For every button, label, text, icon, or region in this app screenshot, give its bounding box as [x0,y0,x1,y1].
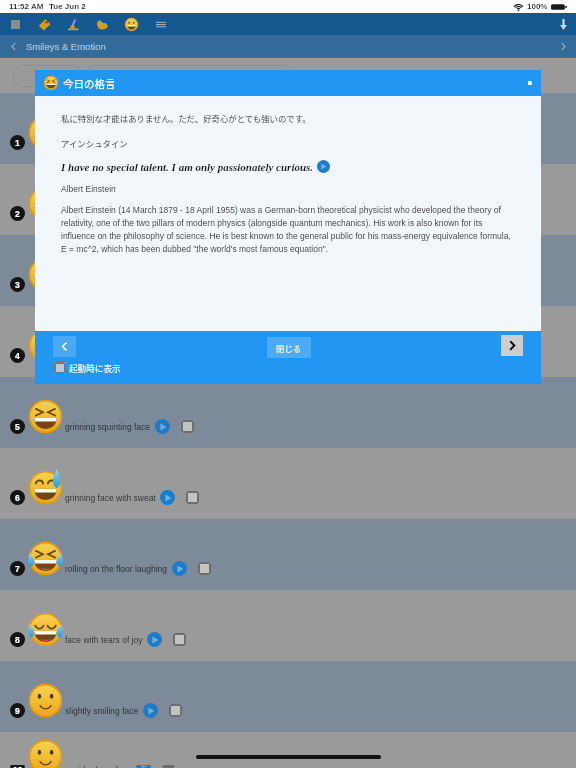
staticText: grinning squinting face [65,422,151,431]
button[interactable]: Close [519,72,541,94]
staticText: Tue Jun 2 [49,2,86,11]
button[interactable]: Play pronunciation [172,561,187,576]
staticText: I have no special talent. I am only pass… [61,161,314,173]
button[interactable]: 2 [0,164,576,235]
staticText: Smileys & Emotion [26,41,106,52]
button[interactable]: 9 [0,661,576,732]
staticText: rolling on the floor laughing [65,564,168,573]
button[interactable]: Select [169,704,182,717]
button[interactable]: 8 [0,590,576,661]
button[interactable]: Emoji [117,13,146,35]
staticText: 6 [15,493,20,502]
staticText: 3 [15,280,20,289]
button[interactable]: Play pronunciation [160,490,175,505]
button[interactable]: Forward [550,35,576,58]
button[interactable]: 閉じる [267,337,311,358]
button[interactable]: Play pronunciation [118,135,133,150]
button[interactable]: 10 [0,732,576,768]
button[interactable]: 7 [0,519,576,590]
staticText: grinning face with sweat [65,493,156,502]
button[interactable]: ? [13,65,83,87]
staticText: 5 [15,422,20,431]
button[interactable]: Select [173,633,186,646]
staticText: 起動時に表示 [69,362,121,374]
staticText: face with tears of joy [65,635,143,644]
button[interactable]: More [146,13,175,35]
button[interactable]: Microscope [59,13,88,35]
staticText: 7 [15,564,20,573]
button[interactable]: Back [0,35,26,58]
button[interactable]: Previous [53,336,76,357]
staticText: grinning face [65,138,114,147]
button[interactable]: Menu [1,13,30,35]
button[interactable]: Next [501,335,523,356]
button[interactable]: Play pronunciation [170,206,185,221]
staticText: 4 [15,351,20,360]
button[interactable]: Search [85,65,295,87]
staticText: 100% [527,2,548,11]
staticText: 10 [13,765,23,768]
button[interactable]: Play pronunciation [147,632,162,647]
button[interactable]: Muscle [88,13,117,35]
staticText: 閉じる [276,342,302,354]
staticText: 今日の格言 [63,76,116,91]
staticText: 8 [15,635,20,644]
button[interactable]: Play pronunciation [143,703,158,718]
staticText: beaming face with smiling eyes [65,351,183,360]
button[interactable]: Play pronunciation [155,419,170,434]
staticText: アインシュタイン [61,137,128,149]
button[interactable]: Select [162,765,175,768]
staticText: grinning face with big eyes [65,209,166,218]
button[interactable]: 3 [0,235,576,306]
staticText: 11:52 AM [9,2,44,11]
staticText: 2 [15,209,20,218]
button[interactable]: 4 [0,306,576,377]
staticText: 9 [15,706,20,715]
button[interactable]: Show at startup [54,362,66,374]
button[interactable]: 5 [0,377,576,448]
staticText: Albert Einstein [61,184,116,193]
button[interactable]: Select [186,491,199,504]
staticText: Albert Einstein (14 March 1879 - 18 Apri… [61,205,515,253]
button[interactable]: Select [196,207,209,220]
button[interactable]: Bookmark [30,13,59,35]
staticText: upside-down face [65,765,132,768]
staticText: slightly smiling face [65,706,139,715]
button[interactable]: Select [181,420,194,433]
button[interactable]: Play pronunciation [317,160,330,173]
button[interactable]: 6 [0,448,576,519]
staticText: 1 [15,138,20,147]
button[interactable]: Download [550,13,576,35]
staticText: 私に特別な才能はありません。ただ、好奇心がとても強いのです。 [61,112,311,124]
button[interactable]: Select [198,562,211,575]
staticText: ? [44,70,52,83]
button[interactable]: Play pronunciation [136,765,151,768]
button[interactable]: 1 [0,93,576,164]
